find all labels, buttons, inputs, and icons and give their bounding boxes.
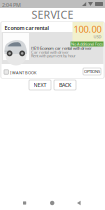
staticText: Econom car rental [4,24,49,32]
staticText: (1E1) Econom car rental with driver [31,45,92,51]
button[interactable]: OPTIONS [83,68,101,75]
staticText: No Additional Fees [71,41,103,47]
staticText: USD [93,34,101,39]
staticText: 100.00 [73,23,101,35]
staticText: OPTIONS [84,69,100,74]
staticText: BACK [59,81,71,89]
button[interactable]: NEXT [29,80,51,90]
button[interactable]: BACK [54,80,76,90]
staticText: 2:04 PM [2,1,21,9]
staticText: I WANT BOOK [10,70,36,75]
staticText: Rent with payment by hour [31,53,76,58]
staticText: NEXT [33,81,46,89]
button[interactable]: I WANT BOOK [4,69,38,75]
button[interactable]: Back [77,201,81,205]
button[interactable]: Recents [23,201,26,205]
button[interactable]: Home [50,201,54,205]
staticText: Car rental with driver [31,49,69,55]
staticText: SERVICE [31,7,73,22]
